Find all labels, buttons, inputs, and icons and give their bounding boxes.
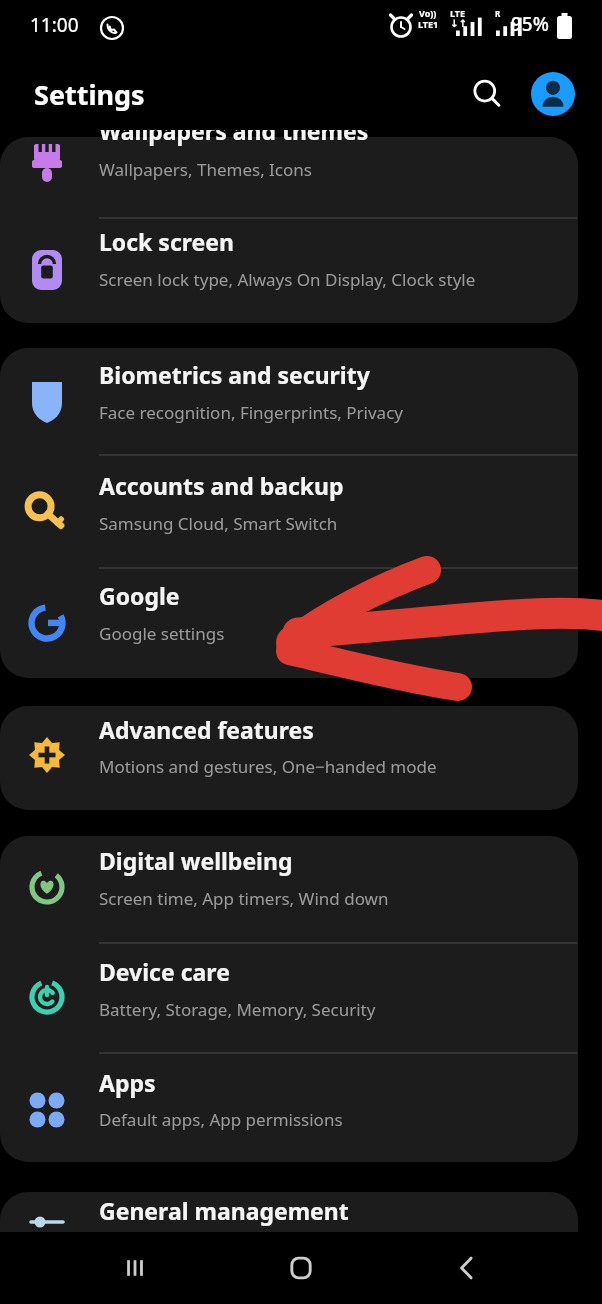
staticText: Apps (99, 1067, 156, 1098)
button[interactable]: Wallpapers and themes (0, 137, 578, 218)
button[interactable]: Advanced features (0, 706, 578, 810)
staticText: Motions and gestures, One−handed mode (99, 755, 437, 778)
staticText: Battery, Storage, Memory, Security (99, 998, 376, 1021)
staticText: Wallpapers, Themes, Icons (99, 158, 312, 181)
staticText: General management (99, 1195, 349, 1226)
staticText: Google settings (99, 622, 225, 645)
staticText: Face recognition, Fingerprints, Privacy (99, 401, 403, 424)
staticText: LTE1 (418, 18, 439, 30)
button[interactable]: Google (0, 568, 578, 678)
button[interactable]: Back (435, 1236, 499, 1300)
button[interactable]: Digital wellbeing (0, 836, 578, 943)
button[interactable]: Lock screen (0, 223, 578, 322)
button[interactable]: Search (462, 69, 512, 119)
button[interactable]: Home (269, 1236, 333, 1300)
staticText: Wallpapers and themes (99, 115, 369, 146)
staticText: Google (99, 580, 180, 611)
staticText: Settings (34, 76, 145, 113)
button[interactable]: Apps (0, 1053, 578, 1162)
staticText: LTE (450, 7, 466, 19)
staticText: Biometrics and security (99, 359, 370, 390)
staticText: Lock screen (99, 226, 234, 257)
button[interactable]: General management (0, 1192, 578, 1292)
staticText: ↓↑ (450, 18, 467, 30)
staticText: 11:00 (30, 12, 79, 38)
staticText: Digital wellbeing (99, 845, 293, 876)
staticText: Vo)) (419, 7, 437, 19)
button[interactable]: Recent apps (103, 1236, 167, 1300)
button[interactable]: Accounts and backup (0, 455, 578, 568)
staticText: Screen time, App timers, Wind down (99, 887, 389, 910)
staticText: Samsung Cloud, Smart Switch (99, 512, 338, 535)
button[interactable]: Account (531, 72, 575, 116)
staticText: Device care (99, 956, 230, 987)
staticText: R (495, 8, 501, 19)
staticText: 95% (511, 11, 549, 37)
staticText: Accounts and backup (99, 470, 344, 501)
staticText: Screen lock type, Always On Display, Clo… (99, 268, 476, 291)
staticText: Advanced features (99, 714, 314, 745)
staticText: Default apps, App permissions (99, 1108, 343, 1131)
button[interactable]: Biometrics and security (0, 348, 578, 455)
button[interactable]: Device care (0, 943, 578, 1053)
